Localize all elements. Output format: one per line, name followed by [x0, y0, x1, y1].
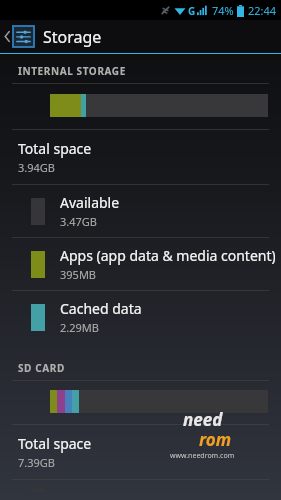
staticText: Apps (app data & media content): [60, 246, 275, 265]
staticText: 3.47GB: [60, 214, 97, 229]
staticText: G: [188, 4, 196, 18]
button[interactable]: Available: [0, 185, 281, 237]
staticText: rom: [199, 428, 232, 451]
staticText: 74%: [212, 3, 234, 18]
staticText: www.needrom.com: [170, 451, 235, 461]
staticText: 22:44: [248, 3, 277, 18]
staticText: INTERNAL STORAGE: [18, 64, 126, 78]
staticText: Storage: [43, 26, 102, 48]
staticText: Available: [60, 193, 120, 212]
button[interactable]: Cached data: [0, 291, 281, 343]
button[interactable]: Back to Settings: [0, 20, 281, 53]
staticText: need: [183, 408, 223, 431]
button[interactable]: Apps (app data & media content): [0, 238, 281, 290]
staticText: 7.39GB: [18, 455, 55, 470]
staticText: 3.94GB: [18, 160, 55, 175]
staticText: SD CARD: [18, 361, 65, 375]
button[interactable]: Total space: [0, 130, 281, 184]
staticText: 2.29MB: [60, 320, 99, 335]
staticText: Total space: [18, 139, 92, 158]
staticText: Cached data: [60, 299, 142, 318]
staticText: Total space: [18, 434, 92, 453]
button[interactable]: Total space: [0, 425, 281, 479]
staticText: 395MB: [60, 267, 97, 282]
